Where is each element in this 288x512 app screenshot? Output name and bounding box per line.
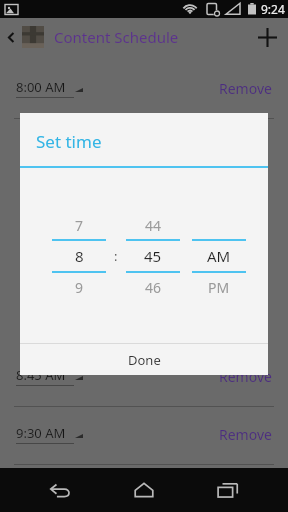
staticText: AM bbox=[207, 246, 231, 266]
staticText: 8:45 AM bbox=[16, 366, 66, 384]
staticText: 46 bbox=[145, 278, 162, 297]
staticText: Set time bbox=[36, 130, 102, 153]
button[interactable]: 9:30 AM bbox=[0, 408, 288, 460]
button[interactable]: 45 bbox=[126, 241, 180, 271]
button[interactable]: 8:00 AM bbox=[0, 62, 288, 114]
button[interactable]: 8:45 AM bbox=[0, 350, 288, 402]
staticText: 8 bbox=[75, 246, 84, 266]
button[interactable]: Remove bbox=[219, 367, 272, 386]
button[interactable]: 44 bbox=[126, 211, 180, 239]
staticText: 45 bbox=[144, 246, 162, 266]
staticText: 8:00 AM bbox=[16, 78, 66, 96]
staticText: Remove bbox=[219, 79, 272, 98]
staticText: PM bbox=[208, 278, 230, 297]
staticText: : bbox=[114, 247, 118, 265]
staticText: Content Schedule bbox=[54, 27, 246, 47]
button[interactable]: PM bbox=[192, 273, 246, 301]
button[interactable]: Remove bbox=[219, 425, 272, 444]
button[interactable]: Back bbox=[36, 468, 84, 512]
button[interactable]: Remove bbox=[219, 79, 272, 98]
staticText: 44 bbox=[145, 216, 162, 235]
staticText: Remove bbox=[219, 367, 272, 386]
button[interactable]: Navigate up bbox=[0, 18, 22, 56]
button[interactable]: 7 bbox=[52, 211, 106, 239]
button[interactable]: Home bbox=[120, 468, 168, 512]
button[interactable]: Add bbox=[246, 18, 288, 56]
staticText: 9 bbox=[75, 278, 84, 297]
button[interactable]: 46 bbox=[126, 273, 180, 301]
button[interactable]: 8 bbox=[52, 241, 106, 271]
staticText: 9:24 bbox=[261, 1, 285, 17]
button[interactable]: Recent apps bbox=[204, 468, 252, 512]
staticText: 9:30 AM bbox=[16, 424, 66, 442]
button[interactable]: Done bbox=[20, 344, 268, 375]
staticText: Remove bbox=[219, 425, 272, 444]
staticText: Done bbox=[128, 351, 161, 369]
staticText: 7 bbox=[75, 216, 84, 235]
button[interactable]: AM bbox=[192, 241, 246, 271]
button[interactable]: 9 bbox=[52, 273, 106, 301]
